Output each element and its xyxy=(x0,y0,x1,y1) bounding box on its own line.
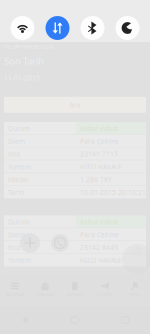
staticText: 1.286 TRY xyxy=(80,175,112,184)
staticText: 23141 7115 xyxy=(80,150,118,158)
staticText: Miktar xyxy=(8,175,29,184)
staticText: Yontem xyxy=(8,256,31,265)
staticText: Para Cekme xyxy=(80,137,119,146)
staticText: Kabul edildi xyxy=(80,124,118,133)
button[interactable]: Wi-Fi xyxy=(10,16,34,40)
staticText: Islem xyxy=(8,137,25,146)
staticText: Yontem xyxy=(8,162,31,171)
button[interactable]: Bluetooth xyxy=(80,16,104,40)
button[interactable]: Do Not Disturb xyxy=(115,16,139,40)
button[interactable]: Add xyxy=(20,233,40,253)
staticText: 10-01-2015 20:10:21 xyxy=(80,188,146,197)
button[interactable]: Durum xyxy=(4,215,146,228)
button[interactable]: Yontem xyxy=(4,254,146,267)
staticText: 23142 8449 xyxy=(80,243,118,252)
staticText: Ara xyxy=(69,100,80,109)
button[interactable]: Cellular Data xyxy=(45,16,69,40)
staticText: HIZLI HAVALE xyxy=(80,256,122,265)
staticText: Tarih xyxy=(8,188,24,197)
staticText: HIZLI HAVALE xyxy=(80,162,122,171)
staticText: Durum xyxy=(8,124,30,133)
staticText: Kod xyxy=(8,243,20,252)
staticText: Durum xyxy=(8,217,30,226)
staticText: Islem xyxy=(8,230,25,239)
staticText: Son Tarih xyxy=(4,55,44,67)
button[interactable]: Kod xyxy=(4,241,146,254)
button[interactable]: WhatsApp xyxy=(51,234,69,252)
staticText: Kabul edildi xyxy=(80,217,118,226)
staticText: Kod xyxy=(8,150,20,158)
button[interactable]: Islem xyxy=(4,228,146,241)
staticText: Para Cekme xyxy=(80,230,119,239)
button[interactable]: Durum xyxy=(4,122,146,135)
